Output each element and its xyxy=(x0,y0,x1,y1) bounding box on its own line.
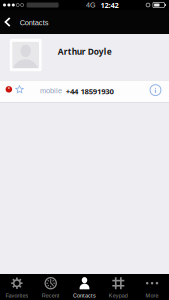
staticText: 12:42 xyxy=(101,0,119,10)
staticText: Recent xyxy=(42,292,60,299)
staticText: mobile xyxy=(40,86,62,95)
button[interactable]: Favorites xyxy=(0,274,34,300)
staticText: +44 18591930 xyxy=(66,86,113,97)
button[interactable]: Recent xyxy=(34,274,68,300)
staticText: Contacts xyxy=(73,292,96,299)
staticText: Favorites xyxy=(5,292,28,299)
staticText: Keypad xyxy=(109,292,128,299)
button[interactable]: mobile xyxy=(0,80,169,102)
staticText: 4G xyxy=(86,1,96,9)
staticText: Arthur Doyle xyxy=(58,46,112,57)
button[interactable]: More xyxy=(135,274,169,300)
staticText: More xyxy=(146,292,159,299)
button[interactable]: Keypad xyxy=(101,274,135,300)
button[interactable]: Contacts xyxy=(0,10,54,34)
staticText: Contacts xyxy=(20,19,49,27)
button[interactable]: Contacts xyxy=(68,274,101,300)
